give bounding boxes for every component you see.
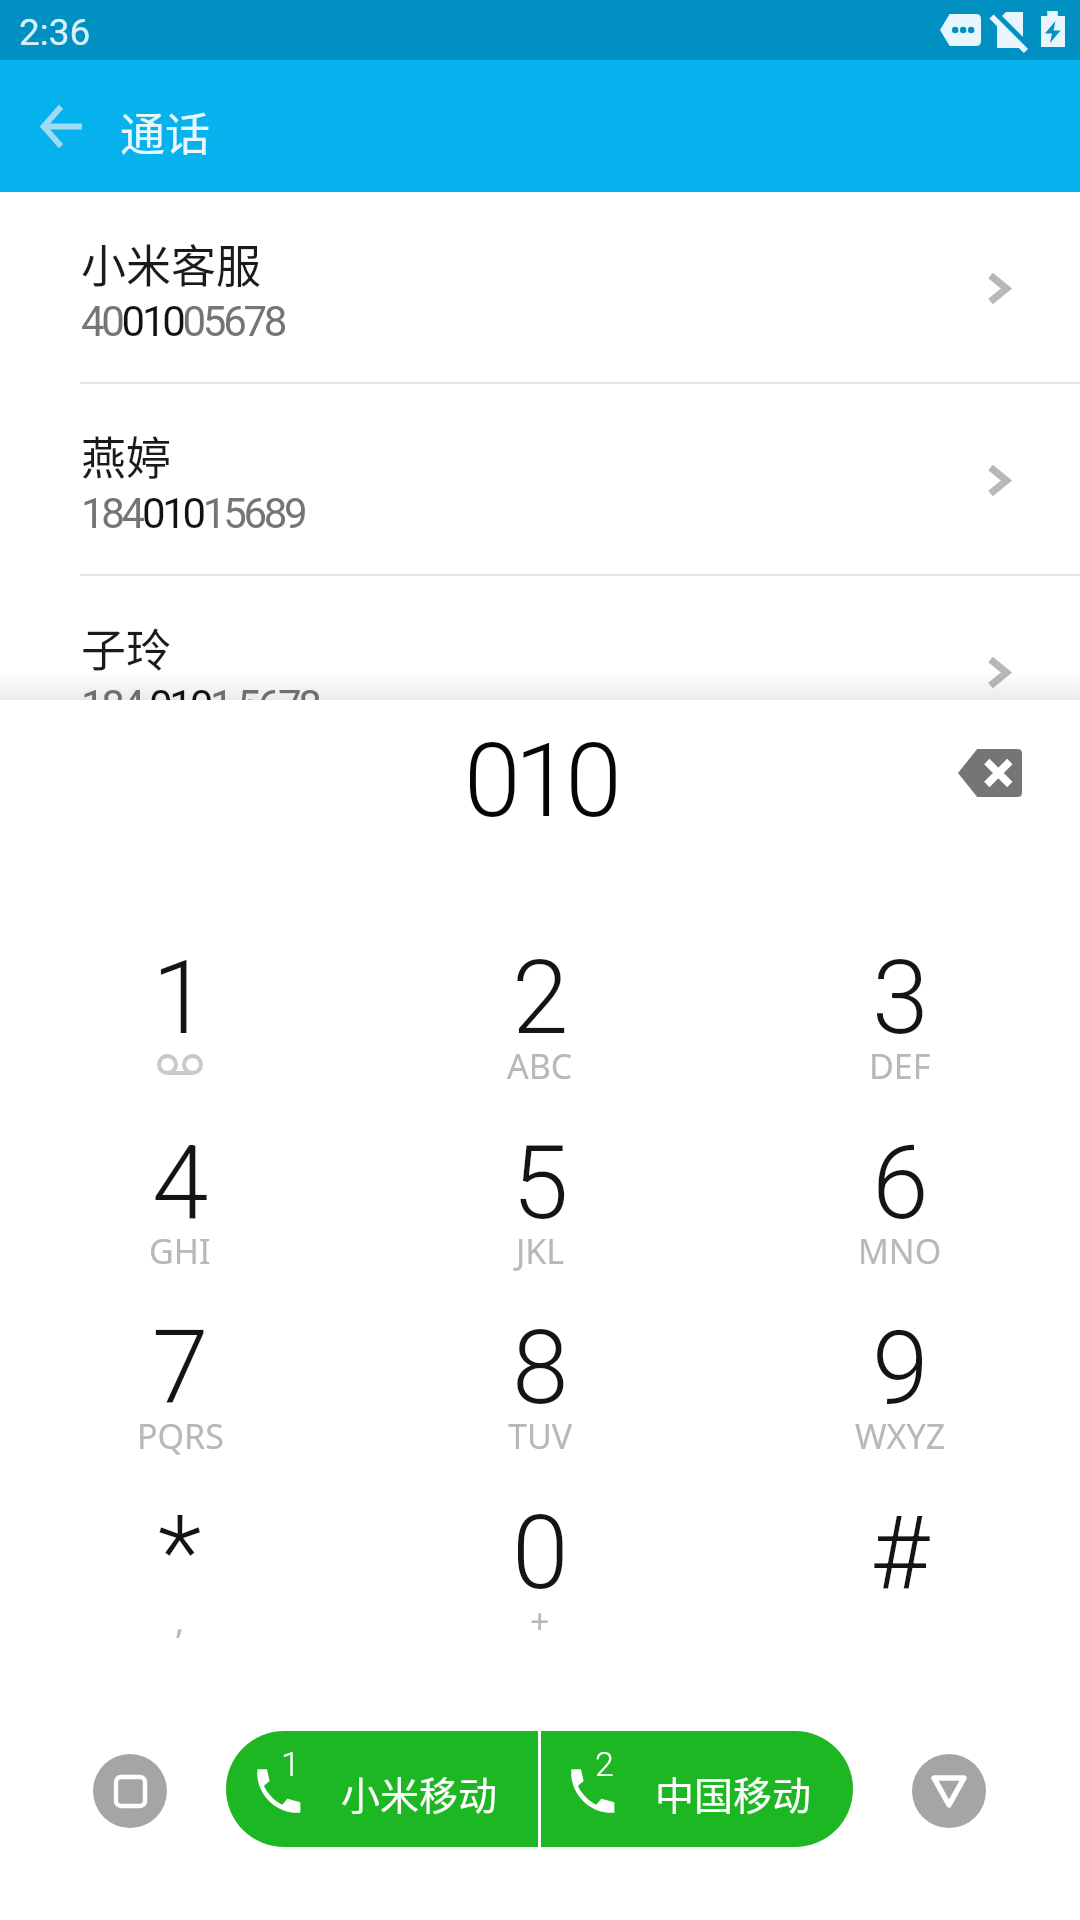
staticText: 2:36 <box>19 11 91 54</box>
staticText: 1 <box>281 1744 300 1784</box>
button[interactable]: 1 <box>0 938 360 1123</box>
button[interactable]: 燕婷 <box>0 384 1080 576</box>
staticText: 6 <box>872 1123 929 1243</box>
button[interactable]: 5 <box>360 1123 720 1308</box>
staticText: 通话 <box>120 99 211 164</box>
staticText: 中国移动 <box>655 1765 812 1821</box>
button[interactable]: 7 <box>0 1308 360 1493</box>
staticText: TUV <box>508 1413 573 1459</box>
staticText: MNO <box>858 1228 942 1274</box>
staticText: 8 <box>512 1308 569 1428</box>
button[interactable]: 6 <box>720 1123 1080 1308</box>
staticText: 燕婷 <box>81 423 172 488</box>
staticText: WXYZ <box>855 1413 946 1459</box>
staticText: , <box>175 1598 185 1644</box>
staticText: DEF <box>869 1043 931 1089</box>
staticText: GHI <box>149 1228 211 1274</box>
staticText: 7 <box>152 1308 209 1428</box>
button[interactable]: 3 <box>720 938 1080 1123</box>
staticText: 1 <box>152 938 209 1058</box>
staticText: 010 <box>464 721 616 841</box>
staticText: 18401015689 <box>81 489 305 538</box>
staticText: 4 <box>152 1123 209 1243</box>
button[interactable]: 2 <box>360 938 720 1123</box>
staticText: 5 <box>512 1123 569 1243</box>
button[interactable]: 8 <box>360 1308 720 1493</box>
staticText: ABC <box>507 1043 573 1089</box>
staticText: PQRS <box>137 1413 224 1459</box>
staticText: 0 <box>512 1493 569 1613</box>
button[interactable]: Back <box>9 74 113 178</box>
button[interactable]: 2 <box>540 1731 853 1847</box>
staticText: 子玲 <box>81 615 172 680</box>
button[interactable]: 4 <box>0 1123 360 1308</box>
button[interactable]: * <box>0 1493 360 1678</box>
staticText: 小米客服 <box>81 231 262 296</box>
staticText: 2 <box>512 938 569 1058</box>
staticText: 9 <box>872 1308 929 1428</box>
button[interactable]: 小米客服 <box>0 192 1080 384</box>
staticText: # <box>870 1493 930 1613</box>
button[interactable]: 9 <box>720 1308 1080 1493</box>
button[interactable]: 子玲 <box>0 576 1080 768</box>
button[interactable]: 1 <box>226 1731 539 1847</box>
staticText: JKL <box>516 1228 565 1274</box>
staticText: + <box>530 1598 550 1644</box>
staticText: * <box>158 1493 202 1613</box>
button[interactable]: # <box>720 1493 1080 1678</box>
button[interactable]: Recents <box>93 1754 167 1828</box>
staticText: 184 0101 5678 <box>81 681 319 730</box>
staticText: 2 <box>595 1744 614 1784</box>
staticText: 小米移动 <box>341 1765 498 1821</box>
button[interactable]: 0 <box>360 1493 720 1678</box>
button[interactable]: Delete <box>942 725 1038 821</box>
staticText: 3 <box>872 938 929 1058</box>
button[interactable]: Hide keypad <box>912 1754 986 1828</box>
staticText: 4001005678 <box>81 297 285 346</box>
